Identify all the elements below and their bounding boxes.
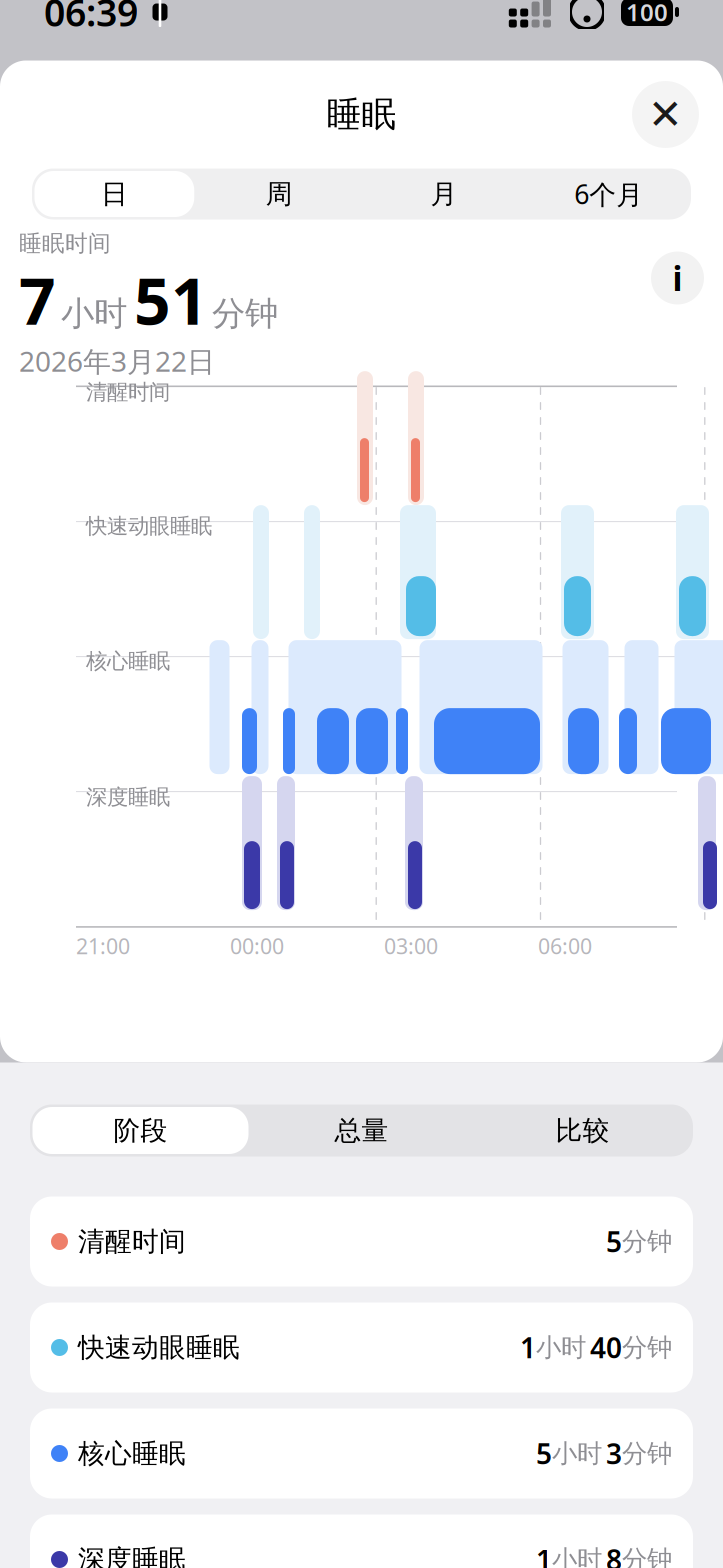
staticText: 40 xyxy=(590,1329,622,1366)
button[interactable]: 清醒时间 xyxy=(30,1196,693,1286)
staticText: 快速动眼睡眠 xyxy=(78,1331,240,1364)
button[interactable]: 比较 xyxy=(472,1104,693,1156)
staticText: 1 xyxy=(520,1329,536,1366)
staticText: 06:39 xyxy=(44,0,138,37)
staticText: 小时 xyxy=(61,293,127,334)
staticText: 周 xyxy=(266,178,293,210)
staticText: 分钟 xyxy=(622,1544,672,1568)
staticText: ✕ xyxy=(648,91,683,138)
staticText: 阶段 xyxy=(113,1114,167,1147)
staticText: 2026年3月22日 xyxy=(19,342,215,379)
staticText: 比较 xyxy=(555,1114,609,1147)
staticText: 分钟 xyxy=(212,293,278,334)
button[interactable]: 阶段 xyxy=(30,1104,251,1156)
staticText: 清醒时间 xyxy=(86,379,170,405)
staticText: 核心睡眠 xyxy=(86,648,170,674)
button[interactable]: 核心睡眠 xyxy=(30,1408,693,1498)
button[interactable]: 信息 xyxy=(651,251,704,304)
staticText: 7 xyxy=(19,257,56,342)
staticText: 6个月 xyxy=(574,176,643,212)
staticText: 分钟 xyxy=(622,1226,672,1257)
button[interactable]: 周 xyxy=(197,168,362,219)
staticText: 51 xyxy=(134,257,208,342)
staticText: 21:00 xyxy=(76,932,130,960)
button[interactable]: 总量 xyxy=(251,1104,472,1156)
staticText: 分钟 xyxy=(622,1332,672,1363)
staticText: 00:00 xyxy=(230,932,284,960)
staticText: 8 xyxy=(606,1541,622,1568)
staticText: i xyxy=(672,256,682,300)
button[interactable]: 6个月 xyxy=(526,168,691,219)
staticText: 月 xyxy=(430,178,457,210)
staticText: 100 xyxy=(626,0,668,28)
staticText: 日 xyxy=(101,178,128,210)
staticText: 快速动眼睡眠 xyxy=(86,513,212,539)
button[interactable]: 日 xyxy=(32,168,197,219)
staticText: 分钟 xyxy=(622,1438,672,1469)
staticText: 5 xyxy=(536,1435,552,1472)
staticText: 小时 xyxy=(536,1332,586,1363)
button[interactable]: 月 xyxy=(361,168,526,219)
button[interactable]: 快速动眼睡眠 xyxy=(30,1302,693,1392)
staticText: 深度睡眠 xyxy=(86,784,170,810)
staticText: 06:00 xyxy=(538,932,592,960)
staticText: 小时 xyxy=(552,1438,602,1469)
staticText: 核心睡眠 xyxy=(78,1437,186,1470)
staticText: 小时 xyxy=(552,1544,602,1568)
staticText: 03:00 xyxy=(384,932,438,960)
staticText: 睡眠时间 xyxy=(19,229,111,257)
button[interactable]: 深度睡眠 xyxy=(30,1514,693,1568)
staticText: 深度睡眠 xyxy=(78,1543,186,1568)
staticText: 清醒时间 xyxy=(78,1225,186,1258)
staticText: 总量 xyxy=(334,1114,388,1147)
button[interactable]: 关闭 xyxy=(632,81,699,148)
staticText: 5 xyxy=(606,1223,622,1260)
staticText: 3 xyxy=(606,1435,622,1472)
staticText: 睡眠 xyxy=(326,93,396,136)
staticText: 1 xyxy=(536,1541,552,1568)
